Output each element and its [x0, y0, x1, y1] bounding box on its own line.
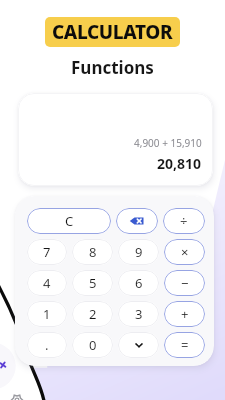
button[interactable]: +: [164, 301, 205, 327]
staticText: 1: [43, 305, 51, 323]
button[interactable]: 7: [27, 239, 67, 265]
button[interactable]: 5: [72, 270, 113, 296]
button[interactable]: 1: [27, 301, 67, 327]
staticText: Functions: [71, 56, 154, 79]
staticText: 0: [89, 336, 97, 354]
button[interactable]: Settings: [11, 394, 23, 400]
button[interactable]: ÷: [163, 208, 205, 234]
button[interactable]: .: [27, 332, 67, 358]
staticText: 4: [43, 274, 51, 292]
staticText: +: [181, 305, 189, 323]
button[interactable]: Backspace: [116, 208, 158, 234]
staticText: 3: [135, 305, 143, 323]
staticText: 4,900 + 15,910: [134, 136, 202, 150]
staticText: 2: [89, 305, 97, 323]
staticText: =: [181, 336, 189, 354]
staticText: 6: [135, 274, 143, 292]
staticText: C: [65, 212, 74, 230]
staticText: CALCULATOR: [52, 19, 173, 45]
staticText: 7: [43, 243, 51, 261]
button[interactable]: C: [27, 208, 111, 234]
staticText: 5: [89, 274, 97, 292]
button[interactable]: 3: [118, 301, 159, 327]
staticText: −: [181, 274, 189, 292]
staticText: 20,810: [157, 154, 202, 173]
button[interactable]: 4,900 + 15,910: [18, 93, 213, 186]
button[interactable]: ×: [164, 239, 205, 265]
staticText: .: [45, 336, 49, 354]
button[interactable]: CALCULATOR: [45, 17, 180, 47]
button[interactable]: 4: [27, 270, 67, 296]
button[interactable]: =: [164, 332, 205, 358]
button[interactable]: 9: [118, 239, 159, 265]
button[interactable]: −: [164, 270, 205, 296]
button[interactable]: 2: [72, 301, 113, 327]
staticText: 9: [135, 243, 143, 261]
button[interactable]: 8: [72, 239, 113, 265]
button[interactable]: 6: [118, 270, 159, 296]
staticText: ÷: [180, 212, 188, 230]
staticText: ×: [181, 243, 189, 261]
staticText: 8: [89, 243, 97, 261]
button[interactable]: 0: [72, 332, 113, 358]
button[interactable]: Collapse keypad: [118, 332, 159, 358]
